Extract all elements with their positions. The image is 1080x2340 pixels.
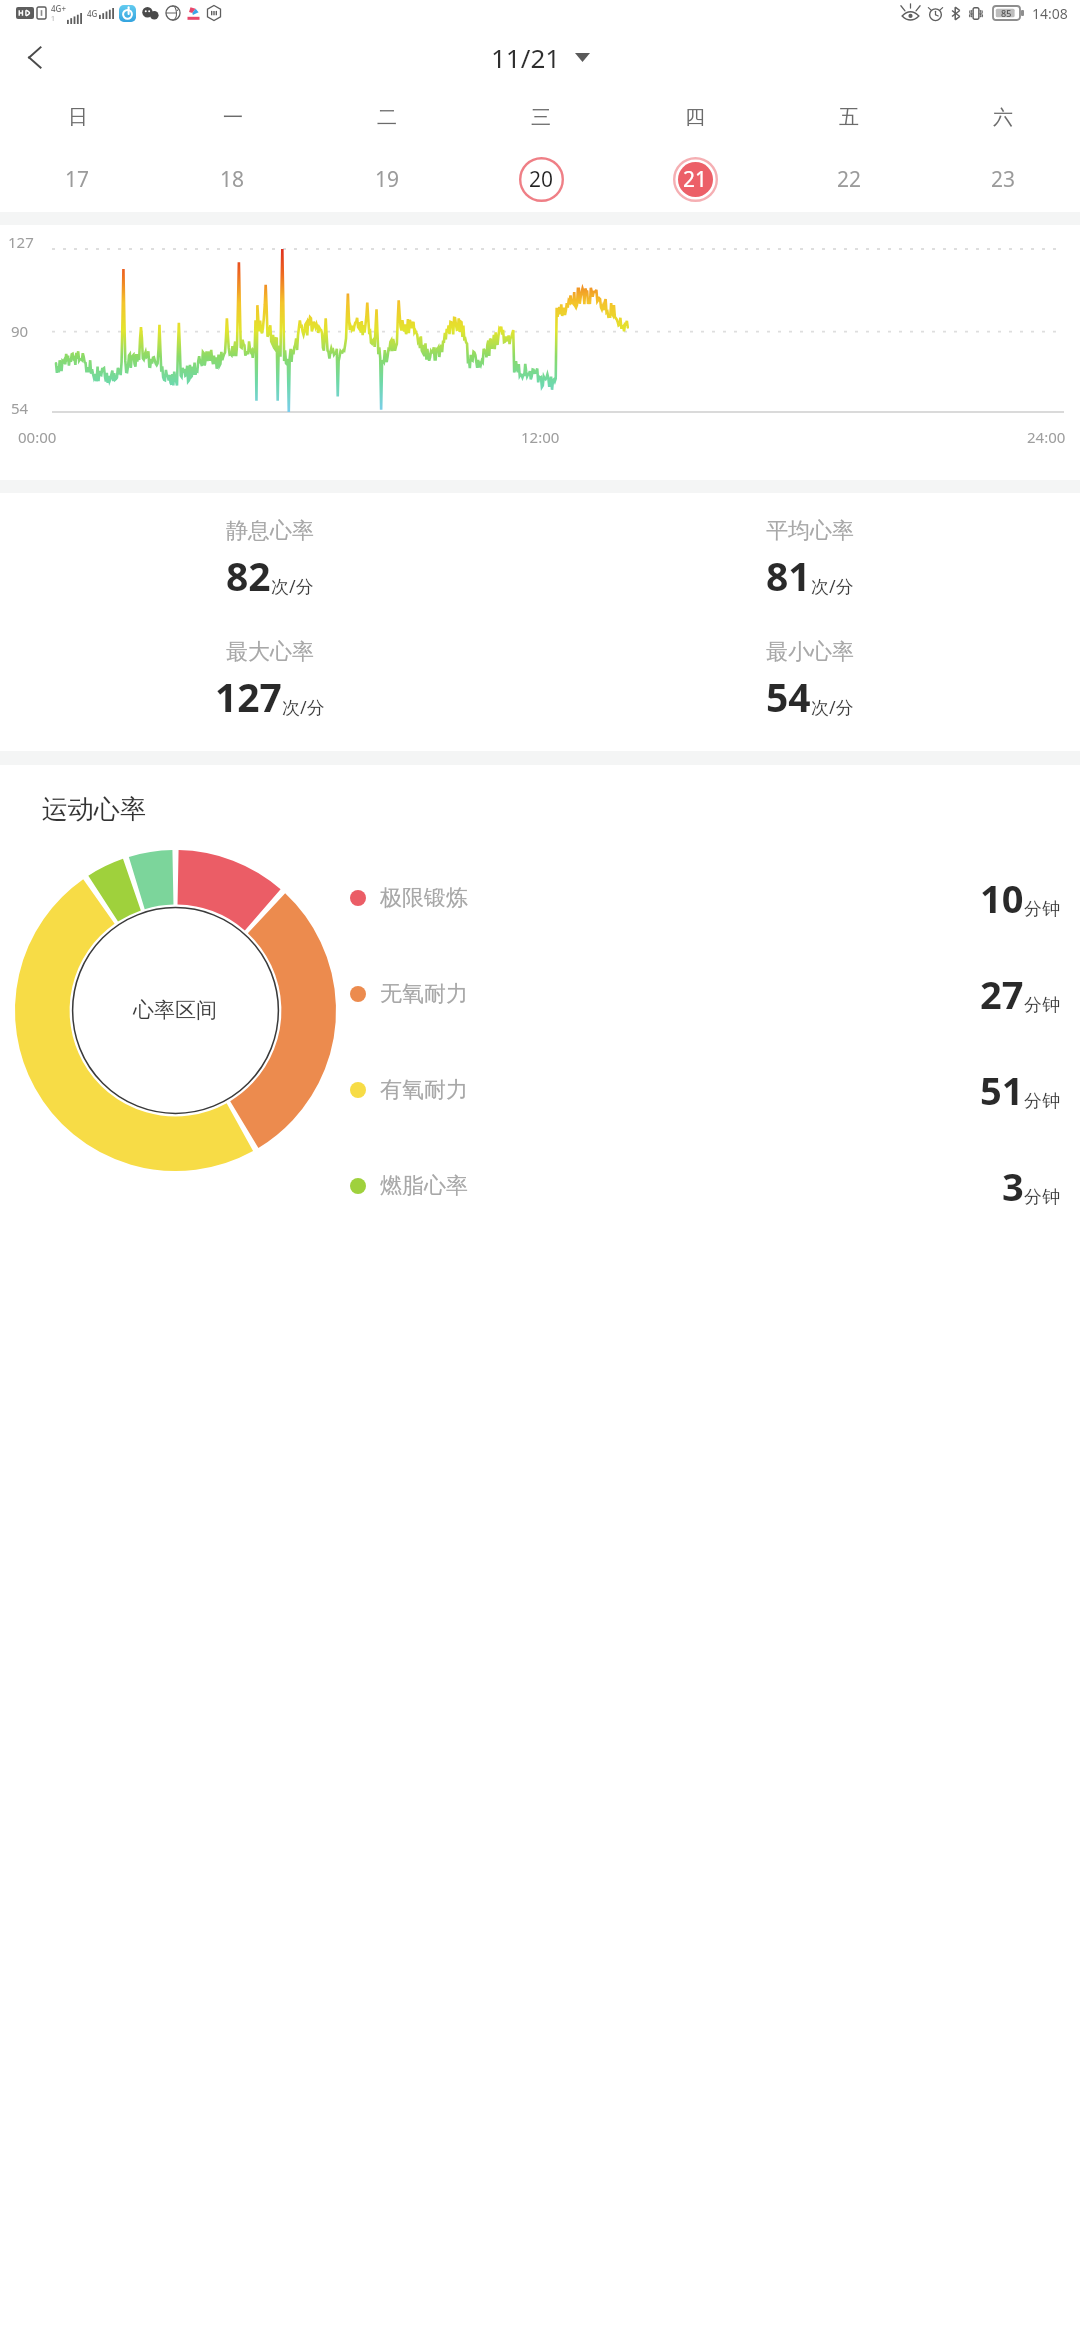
staticText: 90 (11, 321, 29, 341)
staticText: 127 (215, 670, 282, 723)
button[interactable]: 23 (926, 146, 1080, 212)
staticText: 分钟 (1024, 994, 1060, 1017)
staticText: 4G+ (51, 3, 66, 14)
button[interactable]: 有氧耐力 (350, 1064, 1060, 1116)
staticText: 17 (65, 165, 90, 194)
staticText: 一 (223, 105, 243, 130)
staticText: 20 (529, 165, 554, 194)
button[interactable]: 21 (618, 146, 772, 212)
staticText: 分钟 (1024, 898, 1060, 921)
staticText: 心率区间 (133, 997, 217, 1023)
staticText: 五 (839, 105, 859, 130)
staticText: 85 (1001, 7, 1012, 19)
button[interactable]: 燃脂心率 (350, 1160, 1060, 1212)
staticText: 最大心率 (226, 638, 314, 666)
button[interactable]: 20 (464, 146, 618, 212)
staticText: 24:00 (1027, 427, 1066, 447)
staticText: 1 (51, 14, 56, 24)
button[interactable]: 返回 (8, 30, 62, 84)
button[interactable]: 极限锻炼 (350, 872, 1060, 924)
staticText: 22 (837, 165, 862, 194)
staticText: 19 (375, 165, 400, 194)
staticText: 127 (8, 232, 34, 252)
staticText: 次/分 (811, 695, 854, 720)
staticText: 次/分 (811, 574, 854, 599)
staticText: 极限锻炼 (380, 884, 468, 912)
staticText: 六 (993, 105, 1013, 130)
staticText: 三 (531, 105, 551, 130)
staticText: 27 (980, 968, 1024, 1020)
staticText: 分钟 (1024, 1090, 1060, 1113)
staticText: 四 (685, 105, 705, 130)
staticText: 静息心率 (226, 517, 314, 545)
button[interactable]: 11/21 (483, 34, 598, 81)
staticText: 00:00 (18, 427, 57, 447)
staticText: 21 (683, 165, 708, 194)
staticText: 次/分 (282, 695, 325, 720)
staticText: 54 (11, 398, 29, 418)
staticText: 燃脂心率 (380, 1172, 468, 1200)
staticText: 运动心率 (42, 793, 146, 826)
staticText: 82 (226, 549, 271, 602)
staticText: 4G (87, 8, 98, 19)
staticText: 分钟 (1024, 1186, 1060, 1209)
staticText: 54 (766, 670, 811, 723)
staticText: 81 (766, 549, 811, 602)
staticText: 最小心率 (766, 638, 854, 666)
staticText: 二 (377, 105, 397, 130)
staticText: 11/21 (491, 40, 561, 75)
staticText: 14:08 (1032, 4, 1068, 23)
staticText: 23 (991, 165, 1016, 194)
staticText: 有氧耐力 (380, 1076, 468, 1104)
button[interactable]: 22 (772, 146, 926, 212)
staticText: 日 (68, 105, 88, 130)
button[interactable]: 19 (310, 146, 464, 212)
staticText: 51 (980, 1064, 1024, 1116)
staticText: 18 (220, 165, 245, 194)
button[interactable]: 18 (155, 146, 310, 212)
staticText: 3 (1002, 1160, 1024, 1212)
staticText: 无氧耐力 (380, 980, 468, 1008)
staticText: 平均心率 (766, 517, 854, 545)
staticText: 次/分 (271, 574, 314, 599)
staticText: 10 (980, 872, 1024, 924)
button[interactable]: 17 (0, 146, 155, 212)
button[interactable]: 无氧耐力 (350, 968, 1060, 1020)
staticText: 12:00 (521, 427, 560, 447)
